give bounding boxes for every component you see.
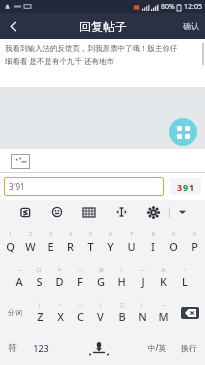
staticText: 换行 bbox=[181, 343, 197, 353]
staticText: 一 bbox=[78, 302, 83, 308]
staticText: J bbox=[141, 274, 145, 289]
staticText: T bbox=[87, 239, 94, 254]
button[interactable]: 十 bbox=[49, 260, 69, 295]
button[interactable]: 6 bbox=[100, 224, 121, 260]
staticText: 123 bbox=[33, 342, 49, 354]
staticText: Z bbox=[37, 309, 44, 324]
staticText: N bbox=[138, 309, 147, 324]
button[interactable]: Back bbox=[0, 13, 26, 39]
button[interactable]: 丨 bbox=[90, 295, 111, 330]
button[interactable]: 乙 bbox=[111, 295, 132, 330]
button[interactable]: 123 bbox=[25, 330, 57, 365]
button[interactable]: 8 bbox=[142, 224, 163, 260]
button[interactable]: 中/英 bbox=[141, 330, 173, 365]
button[interactable]: 0 bbox=[184, 224, 205, 260]
button[interactable]: 一 bbox=[153, 295, 174, 330]
button[interactable]: Hide keyboard bbox=[170, 200, 195, 224]
staticText: V bbox=[97, 309, 104, 324]
staticText: S bbox=[36, 274, 43, 289]
button[interactable]: 符 bbox=[0, 330, 25, 365]
staticText: 80% bbox=[161, 2, 175, 12]
staticText: I bbox=[151, 239, 155, 254]
button[interactable]: 木 bbox=[153, 260, 174, 295]
button[interactable]: 一 bbox=[70, 295, 90, 330]
staticText: 分词 bbox=[8, 308, 22, 317]
staticText: B bbox=[118, 309, 126, 324]
button[interactable]: Emoji bbox=[41, 200, 73, 224]
button[interactable]: 丷 bbox=[69, 260, 90, 295]
staticText: 3′91 bbox=[9, 181, 25, 192]
button[interactable]: 1 bbox=[0, 224, 20, 260]
staticText: H bbox=[117, 274, 126, 289]
staticText: 0 bbox=[193, 231, 196, 238]
staticText: A bbox=[15, 274, 23, 289]
staticText: 3 bbox=[177, 181, 183, 193]
staticText: O bbox=[169, 239, 178, 254]
button[interactable]: 4 bbox=[60, 224, 80, 260]
staticText: Y bbox=[107, 239, 114, 254]
staticText: 1 bbox=[189, 181, 195, 193]
button[interactable]: 口 bbox=[29, 260, 49, 295]
staticText: G bbox=[97, 274, 105, 289]
staticText: 丷 bbox=[78, 267, 83, 273]
button[interactable]: 一 bbox=[9, 260, 29, 295]
button[interactable]: 9 bbox=[163, 224, 184, 260]
staticText: 8 bbox=[152, 231, 155, 238]
staticText: 丨 bbox=[119, 267, 124, 273]
button[interactable]: Move cursor bbox=[105, 200, 137, 224]
staticText: 中/英 bbox=[147, 342, 167, 353]
staticText: U bbox=[127, 239, 136, 254]
staticText: 一 bbox=[161, 302, 166, 308]
button[interactable]: Settings bbox=[137, 200, 169, 224]
staticText: 4 bbox=[69, 231, 72, 238]
button[interactable]: 丿 bbox=[132, 295, 153, 330]
button[interactable]: 7 bbox=[121, 224, 142, 260]
button[interactable]: 5 bbox=[80, 224, 100, 260]
button[interactable]: 丶 bbox=[50, 295, 70, 330]
staticText: 丨 bbox=[98, 302, 103, 308]
staticText: X bbox=[57, 309, 64, 324]
staticText: 1 bbox=[9, 231, 12, 238]
staticText: 确认 bbox=[183, 21, 199, 31]
staticText: 9 bbox=[183, 181, 189, 193]
staticText: W bbox=[25, 239, 36, 254]
staticText: 一 bbox=[17, 267, 22, 273]
staticText: 口 bbox=[37, 267, 42, 273]
button[interactable]: 丶 bbox=[174, 260, 195, 295]
staticText: 丿 bbox=[140, 302, 145, 308]
staticText: 9 bbox=[172, 231, 175, 238]
button[interactable]: 米 bbox=[90, 260, 111, 295]
staticText: 符 bbox=[8, 342, 17, 353]
staticText: M bbox=[158, 309, 169, 324]
staticText: 米 bbox=[99, 267, 104, 273]
button[interactable]: Emoticon bbox=[11, 154, 30, 169]
button[interactable]: 确认 bbox=[183, 21, 199, 31]
button[interactable]: 一 bbox=[132, 260, 153, 295]
staticText: 丶 bbox=[58, 302, 63, 308]
staticText: C bbox=[77, 309, 84, 324]
staticText: 一 bbox=[140, 267, 145, 273]
button[interactable]: Backspace bbox=[174, 295, 205, 330]
button[interactable]: 丨 bbox=[111, 260, 132, 295]
button[interactable]: 3 bbox=[40, 224, 60, 260]
staticText: 乙 bbox=[120, 302, 125, 308]
staticText: 7 bbox=[130, 231, 133, 238]
staticText: R bbox=[67, 239, 74, 254]
staticText: L bbox=[182, 274, 188, 289]
button[interactable]: 3′91 bbox=[4, 177, 164, 196]
button[interactable]: Sogou bbox=[10, 200, 41, 224]
button[interactable]: 换行 bbox=[173, 330, 205, 365]
button[interactable]: Keyboard layout bbox=[73, 200, 105, 224]
button[interactable]: Apps bbox=[169, 118, 197, 146]
button[interactable]: Candidate image bbox=[170, 178, 201, 195]
button[interactable]: 丿 bbox=[30, 295, 50, 330]
staticText: 丿 bbox=[38, 302, 43, 308]
staticText: 细看看 是不是有个九千 还有地市 bbox=[5, 56, 114, 66]
button[interactable]: Space / Voice input bbox=[57, 330, 141, 365]
button[interactable]: 2 bbox=[20, 224, 40, 260]
staticText: 12:05 bbox=[184, 2, 202, 12]
button[interactable]: 分词 bbox=[0, 295, 30, 330]
staticText: Q bbox=[6, 239, 15, 254]
staticText: 6 bbox=[109, 231, 112, 238]
staticText: 5 bbox=[89, 231, 92, 238]
